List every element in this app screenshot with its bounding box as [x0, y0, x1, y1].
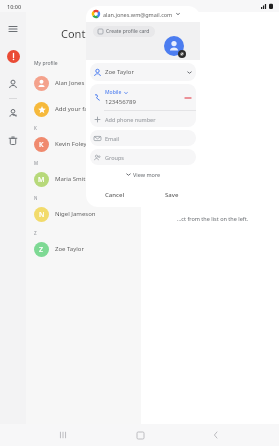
button[interactable]: Cancel — [86, 185, 143, 205]
staticText: Z — [34, 230, 37, 236]
button[interactable]: Add your favo… — [26, 96, 141, 122]
button[interactable]: View more — [120, 169, 167, 180]
staticText: M — [38, 175, 45, 185]
staticText: Kevin Foley — [55, 140, 87, 148]
button[interactable]: Remove phone — [183, 93, 192, 102]
button[interactable]: Add phone number — [90, 111, 196, 127]
staticText: K — [34, 125, 37, 131]
staticText: alan.jones.wm@gmail.com — [103, 11, 173, 18]
staticText: M — [34, 160, 39, 166]
button[interactable]: Email — [90, 130, 196, 146]
button[interactable]: Back — [203, 424, 229, 446]
button[interactable]: Add contact — [2, 102, 24, 124]
button[interactable]: K — [26, 131, 141, 157]
staticText: Add phone number — [105, 116, 156, 123]
staticText: My profile — [34, 60, 58, 67]
button[interactable]: Mobile — [90, 84, 196, 110]
button[interactable]: M — [26, 166, 141, 192]
staticText: Email — [105, 135, 120, 142]
button[interactable]: Alan Jones — [26, 70, 141, 96]
staticText: N — [34, 195, 38, 201]
staticText: Save — [165, 191, 179, 199]
button[interactable]: Menu — [2, 18, 24, 40]
staticText: Mobile — [105, 89, 122, 96]
staticText: …ct from the list on the left. — [177, 215, 249, 222]
button[interactable]: Zoe Taylor — [90, 63, 196, 81]
staticText: 10:00 — [7, 3, 22, 10]
staticText: Alan Jones — [55, 79, 85, 87]
staticText: Contacts — [61, 26, 107, 41]
button[interactable]: N — [26, 201, 141, 227]
staticText: Cancel — [105, 191, 125, 199]
button[interactable]: Groups — [90, 149, 196, 165]
button[interactable]: Create profile card — [93, 26, 155, 37]
staticText: N — [39, 210, 45, 220]
button[interactable]: alan.jones.wm@gmail.com — [86, 6, 200, 22]
button[interactable]: Account — [2, 45, 24, 67]
staticText: Add your favo… — [55, 105, 100, 113]
button[interactable]: Contacts — [2, 73, 24, 95]
button[interactable]: Trash — [2, 130, 24, 152]
staticText: 123456789 — [105, 98, 136, 106]
staticText: Zoe Taylor — [105, 68, 134, 76]
button[interactable]: Recents — [50, 424, 76, 446]
staticText: Groups — [105, 154, 124, 161]
button[interactable]: Z — [26, 236, 141, 262]
button[interactable]: Home — [127, 424, 153, 446]
staticText: K — [39, 140, 44, 150]
staticText: Create profile card — [106, 28, 150, 35]
button[interactable]: Add photo — [164, 36, 186, 58]
staticText: Nigel Jameson — [55, 210, 96, 218]
staticText: Maria Smith — [55, 175, 90, 183]
staticText: Z — [39, 245, 44, 255]
staticText: Zoe Taylor — [55, 245, 84, 253]
button[interactable]: Save — [143, 185, 200, 205]
staticText: View more — [133, 171, 161, 178]
